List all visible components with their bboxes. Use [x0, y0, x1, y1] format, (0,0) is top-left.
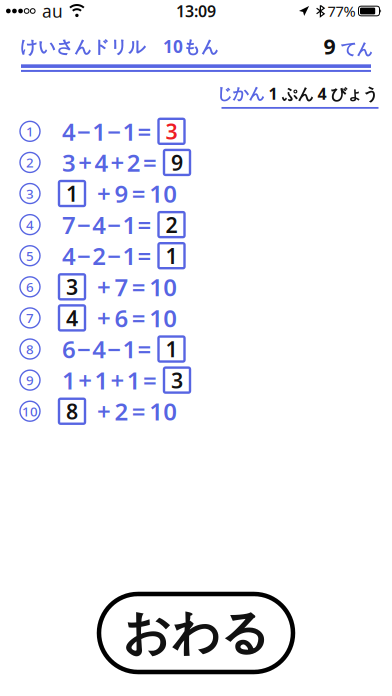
- staticText: +: [97, 271, 111, 303]
- staticText: 1: [127, 364, 141, 396]
- staticText: 10: [149, 302, 177, 334]
- staticText: 3: [66, 273, 78, 301]
- staticText: 4: [62, 115, 76, 147]
- staticText: 9: [26, 371, 34, 389]
- staticText: 2: [114, 395, 128, 427]
- staticText: 8: [26, 340, 34, 358]
- staticText: 1: [62, 364, 76, 396]
- staticText: −: [107, 333, 121, 365]
- staticText: +: [97, 302, 111, 334]
- staticText: 10: [22, 402, 38, 420]
- staticText: おわる: [122, 603, 269, 662]
- staticText: 6: [62, 333, 76, 365]
- staticText: 13:09: [176, 0, 216, 22]
- staticText: +: [78, 364, 92, 396]
- staticText: 1: [122, 115, 136, 147]
- staticText: 6: [114, 302, 128, 334]
- staticText: 1: [66, 179, 78, 208]
- staticText: −: [77, 240, 91, 272]
- staticText: 77%: [327, 1, 355, 21]
- staticText: 3: [171, 366, 183, 394]
- staticText: 1: [165, 242, 177, 270]
- staticText: =: [143, 146, 157, 178]
- staticText: =: [132, 271, 146, 303]
- staticText: =: [137, 115, 151, 147]
- staticText: 2: [26, 154, 34, 171]
- staticText: 1: [165, 335, 177, 363]
- staticText: 4: [66, 304, 78, 332]
- staticText: 7: [26, 309, 34, 327]
- staticText: けいさんドリル 10もん: [20, 35, 219, 58]
- staticText: 6: [26, 278, 34, 296]
- staticText: じかん: [216, 84, 264, 103]
- staticText: 4: [92, 333, 106, 365]
- staticText: −: [77, 115, 91, 147]
- staticText: −: [107, 240, 121, 272]
- button[interactable]: おわる: [99, 594, 293, 672]
- staticText: 1: [122, 209, 136, 241]
- staticText: =: [132, 178, 146, 209]
- staticText: 8: [66, 397, 78, 425]
- staticText: =: [137, 209, 151, 241]
- staticText: −: [77, 209, 91, 241]
- staticText: 1 ぷん 4 びょう: [264, 83, 378, 104]
- staticText: 3: [62, 146, 76, 178]
- staticText: 1: [92, 115, 106, 147]
- staticText: +: [97, 395, 111, 427]
- staticText: +: [78, 146, 92, 178]
- staticText: 2: [92, 240, 106, 272]
- staticText: 4: [26, 216, 34, 233]
- staticText: au: [42, 0, 63, 22]
- staticText: 10: [149, 395, 177, 427]
- staticText: 9: [171, 148, 183, 177]
- staticText: てん: [340, 39, 372, 59]
- staticText: 4: [94, 146, 108, 178]
- staticText: +: [111, 146, 125, 178]
- staticText: 2: [165, 210, 177, 239]
- staticText: 9: [323, 32, 335, 60]
- staticText: 2: [127, 146, 141, 178]
- staticText: =: [143, 364, 157, 396]
- staticText: −: [107, 115, 121, 147]
- staticText: −: [77, 333, 91, 365]
- staticText: 1: [94, 364, 108, 396]
- staticText: 3: [165, 117, 177, 145]
- staticText: 10: [149, 178, 177, 209]
- staticText: 9: [114, 178, 128, 209]
- staticText: 4: [62, 240, 76, 272]
- staticText: +: [111, 364, 125, 396]
- staticText: 1: [122, 333, 136, 365]
- staticText: =: [137, 240, 151, 272]
- staticText: 4: [92, 209, 106, 241]
- staticText: +: [97, 178, 111, 209]
- staticText: 5: [26, 247, 34, 265]
- staticText: −: [107, 209, 121, 241]
- staticText: =: [132, 302, 146, 334]
- staticText: =: [132, 395, 146, 427]
- staticText: 3: [26, 185, 34, 202]
- staticText: =: [137, 333, 151, 365]
- staticText: 7: [62, 209, 76, 241]
- staticText: 10: [149, 271, 177, 303]
- staticText: 1: [122, 240, 136, 272]
- staticText: 1: [26, 122, 34, 140]
- staticText: 7: [114, 271, 128, 303]
